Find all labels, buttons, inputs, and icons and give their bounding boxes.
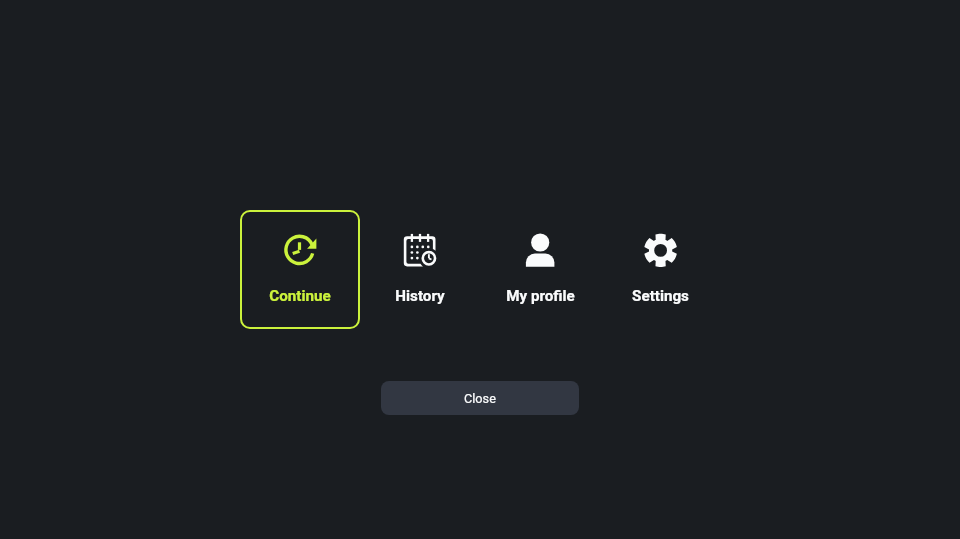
button[interactable]: Settings [600, 210, 720, 329]
staticText: Close [464, 391, 496, 406]
button[interactable]: Continue [240, 210, 360, 329]
staticText: My profile [506, 287, 575, 305]
staticText: History [395, 287, 445, 305]
staticText: Continue [269, 287, 331, 305]
button[interactable]: Close [381, 381, 579, 415]
staticText: Settings [632, 287, 689, 305]
button[interactable]: History [360, 210, 480, 329]
button[interactable]: My profile [480, 210, 600, 329]
